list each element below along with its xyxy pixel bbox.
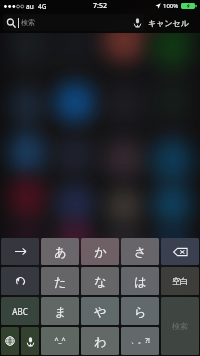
staticText: さ: [134, 244, 147, 259]
staticText: か: [94, 244, 107, 259]
staticText: や: [94, 304, 107, 319]
button[interactable]: Delete: [161, 238, 199, 265]
staticText: わ: [94, 334, 107, 349]
button[interactable]: Change language: [1, 327, 19, 355]
staticText: キャンセル: [148, 18, 189, 28]
other: Delete: [173, 247, 188, 257]
button[interactable]: か: [81, 238, 119, 265]
button[interactable]: さ: [121, 238, 159, 265]
button[interactable]: Undo: [1, 267, 39, 295]
button[interactable]: Next candidate: [1, 238, 39, 265]
staticText: た: [54, 274, 67, 289]
button[interactable]: ^_^: [41, 327, 79, 355]
staticText: は: [134, 274, 147, 289]
button[interactable]: Dictation: [21, 327, 39, 355]
staticText: 検索: [21, 18, 35, 27]
other: Voice search: [134, 17, 141, 28]
button[interactable]: あ: [41, 238, 79, 265]
other: Next candidate: [13, 247, 28, 256]
staticText: 空白: [172, 276, 188, 286]
button[interactable]: ま: [41, 297, 79, 325]
other: Dictation: [27, 336, 34, 347]
button[interactable]: は: [121, 267, 159, 295]
staticText: au: [26, 2, 34, 11]
staticText: 検索: [172, 321, 188, 331]
button[interactable]: 検索: [161, 297, 199, 355]
staticText: 、。?!: [131, 336, 150, 346]
button[interactable]: や: [81, 297, 119, 325]
button[interactable]: ら: [121, 297, 159, 325]
staticText: ら: [134, 304, 147, 319]
staticText: ま: [54, 304, 67, 319]
button[interactable]: た: [41, 267, 79, 295]
staticText: ABC: [12, 306, 28, 317]
staticText: 100%: [163, 2, 179, 10]
button[interactable]: な: [81, 267, 119, 295]
button[interactable]: 空白: [161, 267, 199, 295]
button[interactable]: 、。?!: [121, 327, 159, 355]
other: Undo: [15, 276, 26, 287]
button[interactable]: ABC: [1, 297, 39, 325]
other: Change language: [5, 336, 15, 346]
button[interactable]: わ: [81, 327, 119, 355]
staticText: な: [94, 274, 107, 289]
button[interactable]: 検索: [3, 14, 144, 31]
staticText: あ: [54, 244, 67, 259]
staticText: 4G: [38, 2, 47, 11]
button[interactable]: キャンセル: [148, 14, 189, 31]
staticText: 7:52: [93, 1, 107, 11]
staticText: ^_^: [54, 336, 66, 346]
